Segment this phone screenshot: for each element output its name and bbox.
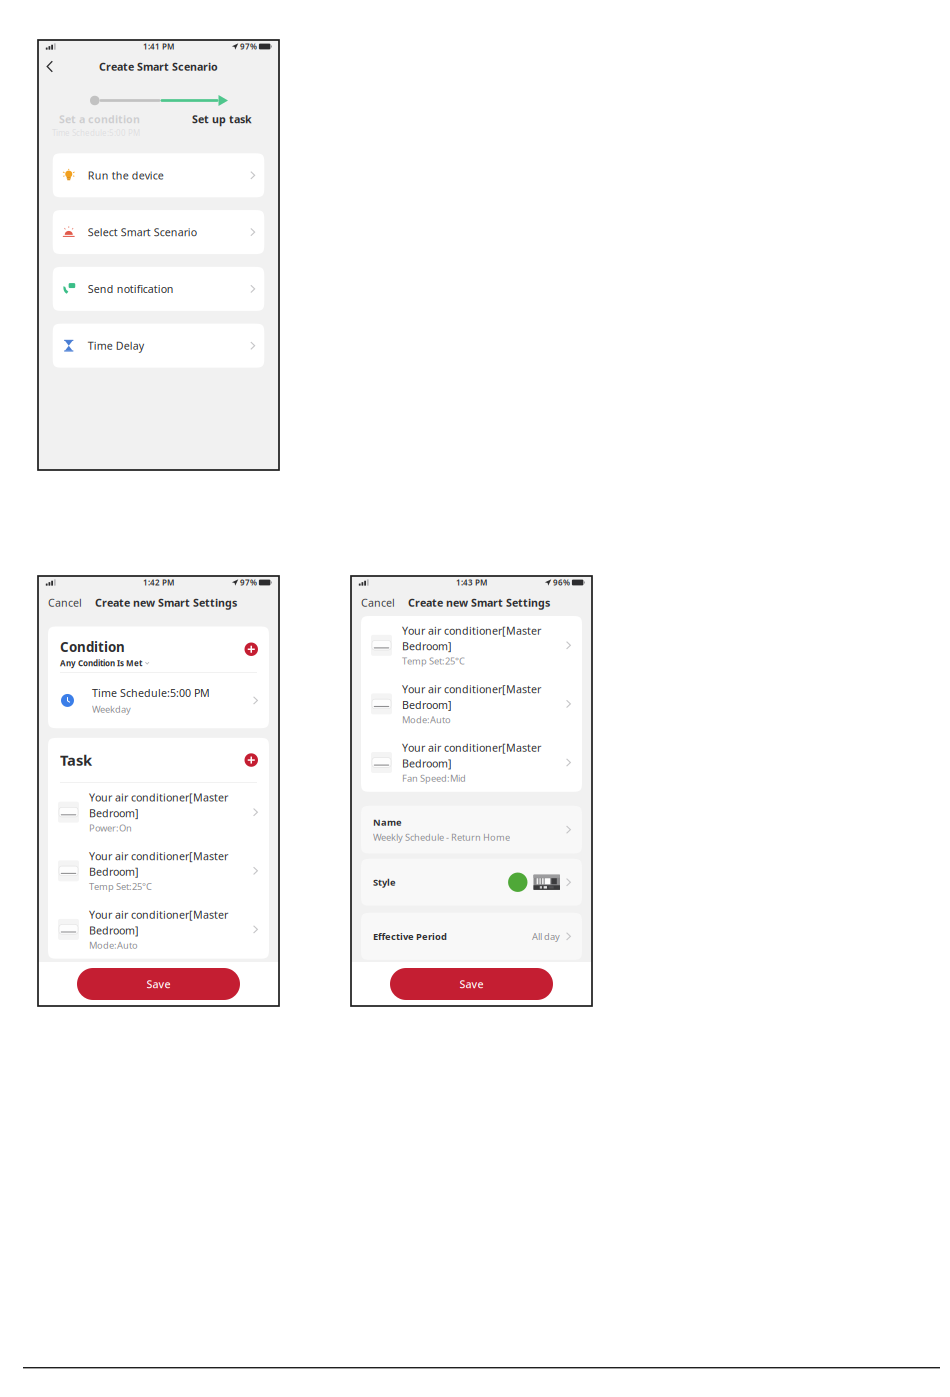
staticText: Bedroom] — [89, 865, 139, 879]
staticText: 1:43 PM — [456, 577, 487, 588]
staticText: Power:On — [89, 822, 132, 834]
button[interactable]: Your air conditioner[Master — [361, 675, 582, 733]
staticText: Time Delay — [88, 339, 144, 353]
button[interactable]: Your air conditioner[Master — [361, 616, 582, 675]
staticText: Your air conditioner[Master — [89, 790, 228, 804]
button[interactable]: Run the device — [53, 153, 264, 197]
staticText: Condition — [60, 638, 125, 656]
staticText: 1:42 PM — [143, 577, 174, 588]
staticText: Create new Smart Settings — [408, 595, 550, 610]
staticText: Time Schedule:5:00 PM — [52, 128, 140, 138]
staticText: Bedroom] — [89, 923, 139, 937]
button[interactable]: Add condition — [244, 642, 258, 656]
button[interactable]: Effective Period — [361, 913, 582, 960]
button[interactable]: Style — [361, 859, 582, 906]
button[interactable]: Name — [361, 806, 582, 853]
staticText: Select Smart Scenario — [88, 225, 197, 239]
button[interactable]: Save — [390, 968, 553, 1000]
staticText: 97% — [240, 577, 257, 588]
staticText: Your air conditioner[Master — [402, 741, 541, 755]
staticText: 96% — [553, 577, 570, 588]
button[interactable]: Time Delay — [53, 324, 264, 368]
button[interactable]: Send notification — [53, 267, 264, 311]
staticText: Your air conditioner[Master — [402, 682, 541, 696]
staticText: Your air conditioner[Master — [402, 623, 541, 638]
staticText: Save — [459, 977, 483, 991]
button[interactable]: Save — [77, 968, 240, 1000]
button[interactable]: Back — [39, 53, 60, 79]
staticText: Create Smart Scenario — [99, 59, 218, 74]
staticText: Cancel — [361, 595, 395, 610]
staticText: Effective Period — [373, 930, 447, 943]
button[interactable]: Your air conditioner[Master — [48, 900, 269, 959]
button[interactable]: Your air conditioner[Master — [361, 733, 582, 792]
button[interactable]: Your air conditioner[Master — [48, 841, 269, 900]
staticText: Bedroom] — [402, 698, 452, 712]
staticText: Bedroom] — [402, 639, 452, 653]
staticText: Weekday — [92, 703, 131, 715]
staticText: Time Schedule:5:00 PM — [92, 686, 210, 700]
staticText: Your air conditioner[Master — [89, 907, 228, 922]
staticText: Create new Smart Settings — [95, 595, 237, 610]
staticText: Name — [373, 816, 402, 828]
button[interactable]: Add task — [244, 753, 258, 767]
staticText: Run the device — [88, 168, 164, 182]
staticText: Bedroom] — [402, 756, 452, 770]
staticText: Any Condition Is Met — [60, 658, 142, 668]
staticText: Temp Set:25°C — [402, 655, 465, 667]
staticText: Style — [373, 876, 396, 888]
staticText: Set a condition — [59, 112, 140, 126]
staticText: Mode:Auto — [402, 713, 451, 726]
staticText: Save — [146, 977, 170, 991]
staticText: Send notification — [88, 282, 174, 296]
button[interactable]: Time Schedule:5:00 PM — [48, 673, 269, 728]
button[interactable]: Cancel — [359, 589, 397, 615]
staticText: Fan Speed:Mid — [402, 772, 466, 784]
staticText: Mode:Auto — [89, 939, 138, 951]
staticText: Bedroom] — [89, 806, 139, 820]
staticText: Temp Set:25°C — [89, 880, 152, 893]
staticText: Your air conditioner[Master — [89, 849, 228, 863]
staticText: Weekly Schedule - Return Home — [373, 831, 510, 843]
staticText: All day — [532, 930, 560, 943]
button[interactable]: Your air conditioner[Master — [48, 783, 269, 841]
button[interactable]: Select Smart Scenario — [53, 210, 264, 254]
staticText: 97% — [240, 41, 257, 52]
staticText: 1:41 PM — [143, 41, 174, 52]
staticText: Set up task — [192, 112, 252, 126]
button[interactable]: Cancel — [46, 589, 84, 615]
staticText: Task — [60, 750, 92, 770]
staticText: Cancel — [48, 595, 82, 610]
